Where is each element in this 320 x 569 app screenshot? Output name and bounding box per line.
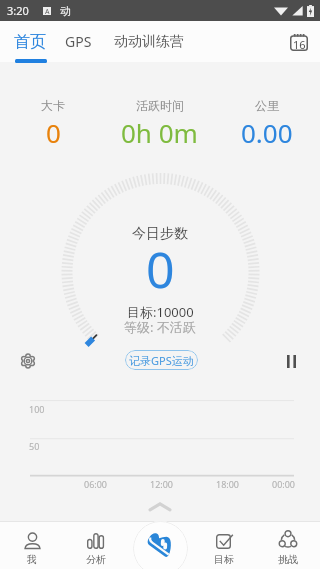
staticText: A: [45, 7, 50, 15]
staticText: 动动训练营: [114, 33, 184, 51]
staticText: 目标: [214, 553, 234, 566]
staticText: 06:00: [84, 478, 108, 490]
staticText: 0.00: [241, 115, 293, 148]
staticText: 今日步数: [132, 225, 188, 243]
staticText: 12:00: [150, 478, 174, 490]
button[interactable]: 挑战: [256, 522, 320, 569]
staticText: 首页: [14, 32, 46, 52]
staticText: 挑战: [278, 553, 298, 566]
staticText: 动: [60, 4, 71, 18]
staticText: GPS: [65, 32, 92, 51]
button[interactable]: 动动训练营: [104, 21, 194, 62]
staticText: 记录GPS运动: [129, 353, 194, 368]
staticText: 目标:10000: [127, 303, 194, 321]
button[interactable]: 记录GPS运动: [125, 350, 198, 370]
button[interactable]: 活跃时间: [106, 62, 213, 148]
button[interactable]: GPS: [56, 21, 104, 62]
staticText: 100: [29, 403, 45, 415]
staticText: 我: [27, 553, 37, 566]
button[interactable]: Settings: [14, 347, 42, 375]
staticText: 公里: [255, 98, 279, 113]
staticText: 大卡: [41, 98, 65, 113]
staticText: 50: [29, 440, 40, 452]
button[interactable]: 首页: [0, 21, 56, 62]
button[interactable]: Start workout: [133, 521, 188, 569]
staticText: 0: [46, 115, 61, 148]
button[interactable]: Pause: [277, 347, 305, 375]
staticText: 分析: [86, 553, 106, 566]
staticText: 16: [293, 37, 306, 52]
staticText: 活跃时间: [136, 98, 184, 113]
button[interactable]: 我: [0, 522, 64, 569]
staticText: 3:20: [7, 3, 29, 18]
button[interactable]: 分析: [64, 522, 128, 569]
button[interactable]: 公里: [213, 62, 320, 148]
staticText: 18:00: [216, 478, 240, 490]
button[interactable]: 大卡: [0, 62, 106, 148]
staticText: 0h 0m: [121, 115, 198, 148]
button[interactable]: 目标: [192, 522, 256, 569]
staticText: 等级: 不活跃: [124, 318, 196, 336]
button[interactable]: Calendar: [280, 24, 318, 62]
staticText: 0: [146, 235, 175, 303]
staticText: 00:00: [272, 478, 296, 490]
